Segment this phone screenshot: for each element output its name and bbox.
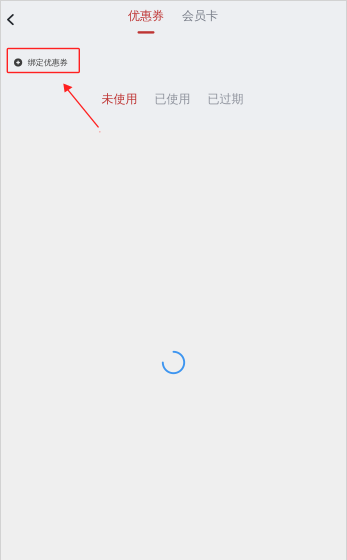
button[interactable]: 已使用 [146, 88, 199, 110]
button[interactable]: 已过期 [199, 88, 252, 110]
button[interactable]: 绑定优惠券 [8, 51, 74, 73]
staticText: 已使用 [154, 92, 190, 106]
staticText: 会员卡 [182, 8, 218, 23]
button[interactable]: Back [0, 6, 23, 33]
button[interactable]: 未使用 [93, 88, 146, 110]
button[interactable]: 优惠券 [124, 5, 168, 37]
staticText: 已过期 [207, 92, 243, 106]
staticText: 绑定优惠券 [28, 58, 68, 67]
staticText: 未使用 [101, 92, 137, 106]
button[interactable]: 会员卡 [178, 5, 222, 37]
staticText: 优惠券 [128, 8, 164, 23]
